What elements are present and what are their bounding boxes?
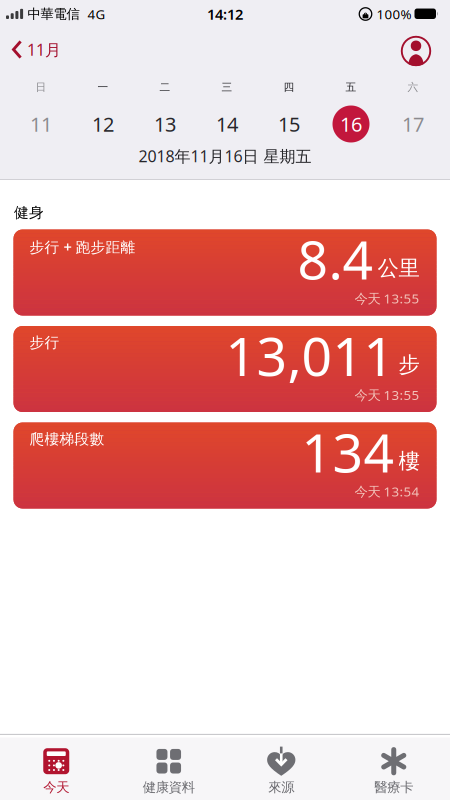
staticText: 134 bbox=[301, 416, 394, 487]
staticText: 六 bbox=[407, 81, 418, 94]
staticText: 五 bbox=[345, 81, 356, 94]
staticText: 三 bbox=[221, 81, 232, 94]
staticText: 公里 bbox=[377, 255, 419, 281]
staticText: 四 bbox=[283, 81, 294, 94]
button[interactable]: 來源 bbox=[225, 748, 337, 796]
button[interactable]: 15 bbox=[258, 104, 320, 144]
button[interactable]: 醫療卡 bbox=[337, 748, 450, 796]
button[interactable]: 11月 bbox=[0, 40, 61, 62]
button[interactable]: 13 bbox=[134, 104, 196, 144]
staticText: 11 bbox=[30, 111, 52, 137]
staticText: 中華電信 bbox=[27, 6, 79, 22]
staticText: 健康資料 bbox=[143, 779, 195, 796]
staticText: 步行 + 跑步距離 bbox=[29, 237, 135, 256]
staticText: 16 bbox=[340, 111, 362, 137]
staticText: 今天 13:55 bbox=[354, 289, 419, 307]
staticText: 步 bbox=[398, 351, 419, 378]
staticText: 11月 bbox=[27, 39, 61, 60]
button[interactable]: 步行 + 跑步距離 bbox=[13, 229, 436, 315]
button[interactable]: 11 bbox=[10, 104, 72, 144]
staticText: 100% bbox=[376, 5, 411, 23]
button[interactable]: 14 bbox=[196, 104, 258, 144]
button[interactable]: 今天 bbox=[0, 748, 112, 796]
staticText: 今天 bbox=[43, 779, 69, 796]
button[interactable] bbox=[401, 36, 450, 66]
staticText: 4G bbox=[87, 5, 105, 23]
staticText: 樓 bbox=[398, 448, 419, 474]
staticText: 二 bbox=[159, 81, 170, 94]
staticText: 14 bbox=[216, 111, 238, 137]
staticText: 今天 13:55 bbox=[354, 386, 419, 404]
staticText: 日 bbox=[35, 81, 46, 94]
staticText: 13 bbox=[154, 111, 176, 137]
staticText: 17 bbox=[402, 111, 424, 137]
staticText: 醫療卡 bbox=[374, 779, 413, 796]
staticText: 爬樓梯段數 bbox=[29, 430, 104, 448]
button[interactable]: 健康資料 bbox=[112, 748, 225, 796]
staticText: 12 bbox=[92, 111, 114, 137]
button[interactable]: 17 bbox=[382, 104, 444, 144]
button[interactable]: 16 bbox=[320, 104, 382, 144]
staticText: 步行 bbox=[29, 333, 59, 351]
button[interactable]: 12 bbox=[72, 104, 134, 144]
staticText: 一 bbox=[97, 81, 108, 94]
staticText: 14:12 bbox=[207, 4, 243, 24]
staticText: 13,011 bbox=[225, 320, 394, 391]
staticText: 2018年11月16日 星期五 bbox=[138, 145, 311, 167]
button[interactable]: 爬樓梯段數 bbox=[13, 422, 436, 508]
button[interactable]: 步行 bbox=[13, 326, 436, 412]
staticText: 8.4 bbox=[297, 223, 373, 294]
staticText: 健身 bbox=[14, 203, 44, 221]
staticText: 15 bbox=[278, 111, 300, 137]
staticText: 今天 13:54 bbox=[354, 482, 419, 500]
staticText: 來源 bbox=[268, 779, 294, 796]
